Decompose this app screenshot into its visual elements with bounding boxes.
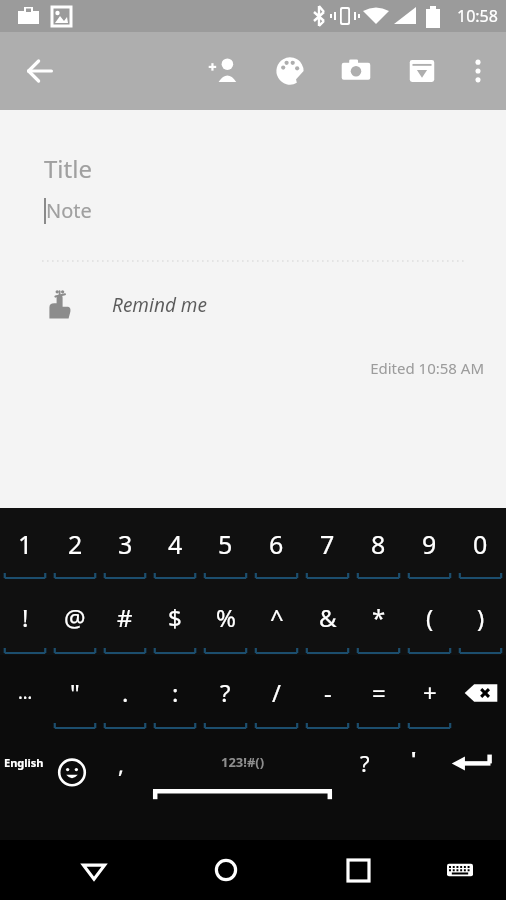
button[interactable]: : [150, 655, 200, 730]
staticText: - [324, 676, 332, 709]
button[interactable]: Back [61, 840, 127, 900]
staticText: ) [477, 601, 485, 634]
button[interactable]: … [0, 655, 50, 730]
button[interactable]: Change color [262, 43, 318, 99]
staticText: 8 [371, 527, 386, 561]
staticText: 0 [473, 527, 488, 561]
staticText: ? [360, 748, 370, 778]
button[interactable]: Note [46, 197, 92, 224]
button[interactable]: + [404, 655, 455, 730]
staticText: ' [411, 745, 417, 772]
staticText: ! [22, 601, 29, 634]
button[interactable]: Emoji [48, 730, 96, 820]
button[interactable]: 2 [50, 508, 100, 580]
button[interactable]: 9 [404, 508, 455, 580]
staticText: 9 [422, 527, 437, 561]
button[interactable]: 4 [150, 508, 200, 580]
staticText: & [319, 601, 337, 634]
staticText: % [216, 601, 236, 634]
button[interactable]: 7 [302, 508, 353, 580]
button[interactable]: ? [200, 655, 251, 730]
staticText: English [4, 755, 44, 770]
staticText: . [122, 676, 129, 709]
button[interactable]: 3 [100, 508, 150, 580]
button[interactable]: Back [14, 45, 66, 97]
staticText: $ [168, 601, 182, 634]
staticText: … [18, 680, 33, 705]
button[interactable]: Home [193, 840, 259, 900]
button[interactable]: ) [455, 580, 506, 655]
staticText: @ [64, 601, 86, 634]
button[interactable]: More options [450, 43, 506, 99]
button[interactable]: ^ [251, 580, 302, 655]
button[interactable]: Title [44, 152, 92, 185]
staticText: 1 [18, 527, 33, 561]
button[interactable]: $ [150, 580, 200, 655]
button[interactable]: ' [389, 730, 438, 820]
button[interactable]: Recent apps [325, 840, 391, 900]
staticText: 10:58 [457, 5, 498, 27]
staticText: = [372, 676, 386, 709]
staticText: / [272, 676, 281, 709]
staticText: * [372, 601, 386, 634]
staticText: 4 [168, 527, 183, 561]
button[interactable]: 5 [200, 508, 251, 580]
button[interactable]: , [96, 730, 145, 820]
button[interactable]: 1 [0, 508, 50, 580]
staticText: : [172, 676, 179, 709]
button[interactable]: Remind me [44, 290, 207, 320]
staticText: 2 [68, 527, 83, 561]
button[interactable]: 0 [455, 508, 506, 580]
staticText: 5 [218, 527, 233, 561]
staticText: , [118, 749, 124, 779]
button[interactable]: Add collaborator [196, 43, 252, 99]
staticText: ^ [270, 601, 284, 634]
staticText: 3 [118, 527, 133, 561]
button[interactable]: / [251, 655, 302, 730]
staticText: " [70, 676, 80, 709]
staticText: Edited 10:58 AM [0, 358, 484, 378]
button[interactable]: = [353, 655, 404, 730]
button[interactable]: Switch keyboard [427, 840, 493, 900]
button[interactable]: . [100, 655, 150, 730]
button[interactable]: " [50, 655, 100, 730]
button[interactable]: & [302, 580, 353, 655]
staticText: ? [220, 676, 231, 709]
button[interactable]: ( [404, 580, 455, 655]
staticText: 7 [320, 527, 335, 561]
staticText: 123!#() [221, 753, 265, 771]
button[interactable]: ! [0, 580, 50, 655]
button[interactable]: Add image [328, 43, 384, 99]
button[interactable]: @ [50, 580, 100, 655]
button[interactable]: Backspace [455, 655, 506, 730]
button[interactable]: English [0, 730, 48, 820]
button[interactable]: # [100, 580, 150, 655]
staticText: ( [426, 601, 434, 634]
button[interactable]: % [200, 580, 251, 655]
button[interactable]: 6 [251, 508, 302, 580]
staticText: # [117, 601, 133, 634]
button[interactable]: * [353, 580, 404, 655]
button[interactable]: Enter [438, 730, 506, 820]
staticText: 6 [269, 527, 284, 561]
button[interactable]: 8 [353, 508, 404, 580]
staticText: Remind me [112, 292, 207, 318]
button[interactable]: Space [145, 730, 340, 820]
button[interactable]: ? [340, 730, 389, 820]
button[interactable]: - [302, 655, 353, 730]
button[interactable]: Archive [394, 43, 450, 99]
staticText: + [423, 676, 437, 709]
